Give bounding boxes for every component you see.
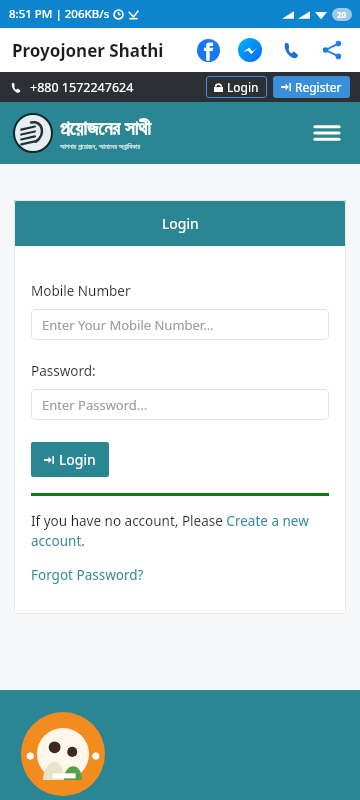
staticText: Forgot Password? [31, 566, 144, 584]
button[interactable]: Enter Password... [31, 389, 329, 420]
staticText: Login [162, 214, 199, 233]
staticText: Password: [31, 362, 96, 380]
button[interactable]: Messenger [234, 34, 266, 66]
button[interactable]: If you have no account, Please Create a … [31, 512, 329, 550]
staticText: আপনার প্রয়োজন, আমাদের অগ্রাধিকার [60, 142, 141, 152]
staticText: If you have no account, Please Create a … [31, 512, 329, 550]
staticText: Proyojoner Shathi [12, 39, 164, 62]
button[interactable]: Forgot Password? [31, 566, 144, 584]
button[interactable]: Register [273, 76, 350, 98]
staticText: 8:51 PM | 206KB/s [9, 6, 110, 22]
button[interactable]: Login [206, 76, 267, 98]
button[interactable]: Enter Your Mobile Number... [31, 309, 329, 340]
staticText: Enter Your Mobile Number... [42, 316, 214, 334]
staticText: Enter Password... [42, 396, 148, 414]
staticText: Mobile Number [31, 282, 131, 300]
button[interactable]: Login [31, 442, 109, 477]
button[interactable]: Menu [310, 116, 344, 150]
staticText: Login [227, 79, 259, 95]
staticText: 20 [337, 9, 347, 20]
staticText: Register [295, 79, 342, 95]
button[interactable]: Share [316, 34, 348, 66]
staticText: +880 1572247624 [30, 79, 134, 96]
staticText: Login [59, 450, 96, 469]
staticText: প্রয়োজনের সাথী [60, 115, 151, 141]
button[interactable]: Facebook [192, 34, 224, 66]
button[interactable]: Call [276, 34, 308, 66]
